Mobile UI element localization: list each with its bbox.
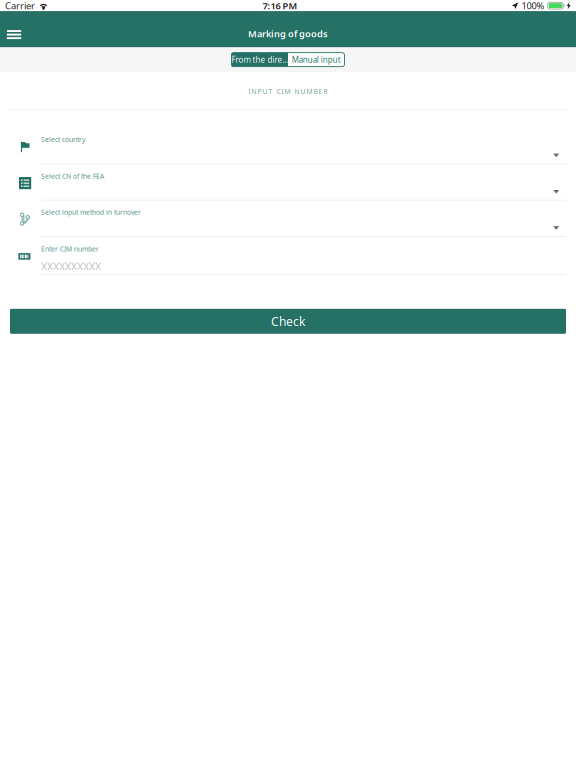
button[interactable]: Menu [0, 11, 21, 47]
staticText: Select country [41, 135, 85, 144]
staticText: Select CN of the FEA [41, 172, 104, 181]
button[interactable]: Manual input [288, 53, 344, 67]
staticText: Select input method in turnover [41, 208, 141, 217]
staticText: 100% [522, 0, 545, 12]
button[interactable]: Select country [0, 111, 576, 164]
staticText: Enter CIM number [41, 244, 99, 253]
staticText: Carrier [5, 0, 35, 12]
staticText: Check [271, 313, 305, 329]
button[interactable]: Enter CIM number [0, 237, 576, 275]
button[interactable]: Select input method in turnover [0, 201, 576, 237]
staticText: Manual input [292, 54, 341, 65]
staticText: Marking of goods [248, 27, 328, 40]
staticText: I N P U T C I M N U M B E R [248, 87, 327, 96]
button[interactable]: From the direct... [231, 53, 288, 67]
button[interactable]: Select CN of the FEA [0, 164, 576, 201]
button[interactable]: Check [10, 309, 566, 334]
staticText: XXXXXXXXXX [41, 259, 101, 273]
staticText: 7:16 PM [262, 0, 297, 12]
staticText: From the direct... [231, 54, 288, 65]
